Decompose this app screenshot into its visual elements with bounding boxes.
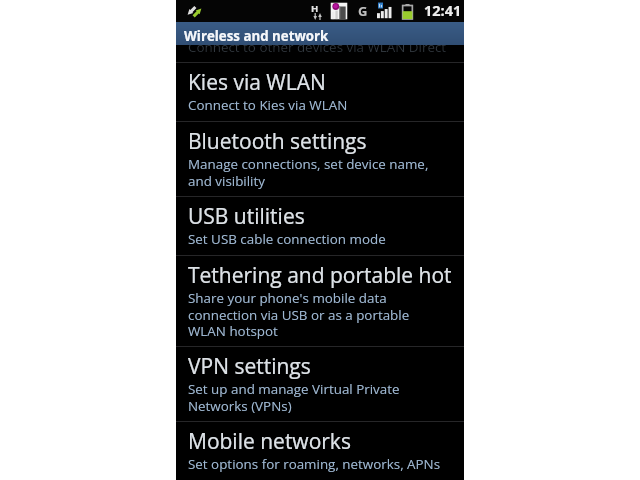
button[interactable]: USB utilities (176, 197, 464, 255)
other: Notification (330, 2, 348, 20)
staticText: Connect to Kies via WLAN (188, 96, 348, 114)
staticText: Mobile networks (188, 427, 351, 456)
staticText: Share your phone's mobile data connectio… (188, 289, 410, 339)
staticText: Set USB cable connection mode (188, 230, 386, 248)
staticText: Kies via WLAN (188, 68, 326, 97)
other: Signal strength (377, 2, 391, 20)
other: Data transfer (187, 4, 202, 19)
staticText: USB utilities (188, 202, 305, 231)
staticText: Tethering and portable hotspot (188, 261, 451, 290)
button[interactable]: Bluetooth settings (176, 122, 464, 196)
staticText: Set options for roaming, networks, APNs (188, 455, 441, 473)
button[interactable]: VPN settings (176, 347, 464, 421)
staticText: H (311, 2, 319, 15)
staticText: VPN settings (188, 352, 311, 381)
staticText: Set up and manage Virtual Private Networ… (188, 380, 400, 414)
button[interactable]: Connect to other devices via WLAN Direct (176, 45, 464, 62)
button[interactable]: Wireless and network (176, 22, 464, 45)
button[interactable]: Kies via WLAN (176, 63, 464, 121)
staticText: G (358, 2, 368, 20)
staticText: Manage connections, set device name, and… (188, 155, 429, 189)
staticText: Bluetooth settings (188, 127, 367, 156)
button[interactable]: Tethering and portable hotspot (176, 256, 464, 346)
staticText: 12:41 (424, 1, 462, 21)
button[interactable]: Mobile networks (176, 422, 464, 480)
other: Battery (402, 4, 413, 19)
staticText: Wireless and network (184, 27, 329, 45)
staticText: Connect to other devices via WLAN Direct (188, 45, 447, 55)
